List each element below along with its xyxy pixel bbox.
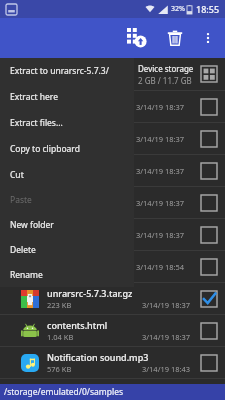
button[interactable]: Rename: [0, 262, 134, 287]
staticText: 1.04 KB: [47, 332, 74, 342]
staticText: 576 KB: [47, 364, 72, 374]
staticText: 3/14/19 18:43: [142, 364, 191, 374]
staticText: Notification sound.mp3: [47, 351, 149, 363]
button[interactable]: Notification sound.mp3: [0, 347, 225, 378]
button[interactable]: Select: [201, 259, 217, 275]
staticText: 223 KB: [47, 300, 72, 310]
staticText: 3/14/19 18:37: [136, 198, 185, 208]
button[interactable]: Select: [201, 291, 217, 307]
staticText: Paste: [10, 194, 32, 206]
button[interactable]: Select: [201, 163, 217, 179]
staticText: Rename: [10, 269, 43, 281]
button[interactable]: Extract to unrarsrc-5.7.3/: [0, 58, 134, 84]
button[interactable]: contents.html: [0, 315, 225, 346]
staticText: 3/14/19 18:37: [136, 230, 185, 240]
staticText: Extract to unrarsrc-5.7.3/: [10, 65, 109, 77]
button[interactable]: 3/14/19 18:37: [0, 123, 225, 154]
button[interactable]: Delete: [157, 20, 193, 56]
button[interactable]: New folder: [0, 212, 134, 237]
staticText: 2 GB / 11.7 GB: [138, 75, 192, 86]
staticText: Cut: [10, 169, 24, 181]
staticText: 32%: [171, 4, 185, 14]
staticText: 3/14/19 18:37: [136, 102, 185, 112]
staticText: 3/14/19 18:37: [142, 300, 191, 310]
staticText: New folder: [10, 219, 54, 231]
button[interactable]: 3/14/19 18:54: [0, 251, 225, 282]
button[interactable]: Select: [201, 355, 217, 371]
button[interactable]: Extract files...: [0, 110, 134, 136]
button[interactable]: Delete: [0, 237, 134, 262]
button[interactable]: Select: [201, 227, 217, 243]
button[interactable]: 3/14/19 18:37: [0, 187, 225, 218]
staticText: Extract files...: [10, 117, 63, 129]
button[interactable]: 3/14/19 18:37: [0, 155, 225, 186]
button[interactable]: Copy to clipboard: [0, 136, 134, 162]
button[interactable]: Select: [201, 131, 217, 147]
button[interactable]: Select: [201, 323, 217, 339]
button[interactable]: Select: [201, 195, 217, 211]
staticText: 3/14/19 18:37: [142, 332, 191, 342]
button[interactable]: Cut: [0, 162, 134, 187]
staticText: /storage/emulated/0/samples: [4, 386, 124, 398]
staticText: unrarsrc-5.7.3.tar.gz: [47, 287, 133, 299]
staticText: Copy to clipboard: [10, 143, 80, 155]
button[interactable]: Device storage: [0, 58, 225, 90]
button[interactable]: Paste: [0, 187, 134, 212]
other: Grid view: [201, 66, 217, 82]
staticText: 18:55: [196, 3, 220, 15]
button[interactable]: 3/14/19 18:37: [0, 91, 225, 122]
staticText: Device storage: [138, 63, 194, 74]
staticText: 3/14/19 18:37: [136, 166, 185, 176]
button[interactable]: unrarsrc-5.7.3.tar.gz: [0, 283, 225, 314]
button[interactable]: Extract here: [0, 84, 134, 110]
staticText: Extract here: [10, 91, 58, 103]
staticText: 3/14/19 18:54: [136, 262, 185, 272]
button[interactable]: More options: [193, 23, 223, 53]
button[interactable]: 3/14/19 18:37: [0, 219, 225, 250]
button[interactable]: /storage/emulated/0/samples: [0, 384, 225, 400]
staticText: Delete: [10, 244, 36, 256]
staticText: contents.html: [47, 319, 108, 331]
button[interactable]: Select: [201, 99, 217, 115]
staticText: 3/14/19 18:37: [136, 134, 185, 144]
button[interactable]: Extract: [117, 18, 157, 58]
